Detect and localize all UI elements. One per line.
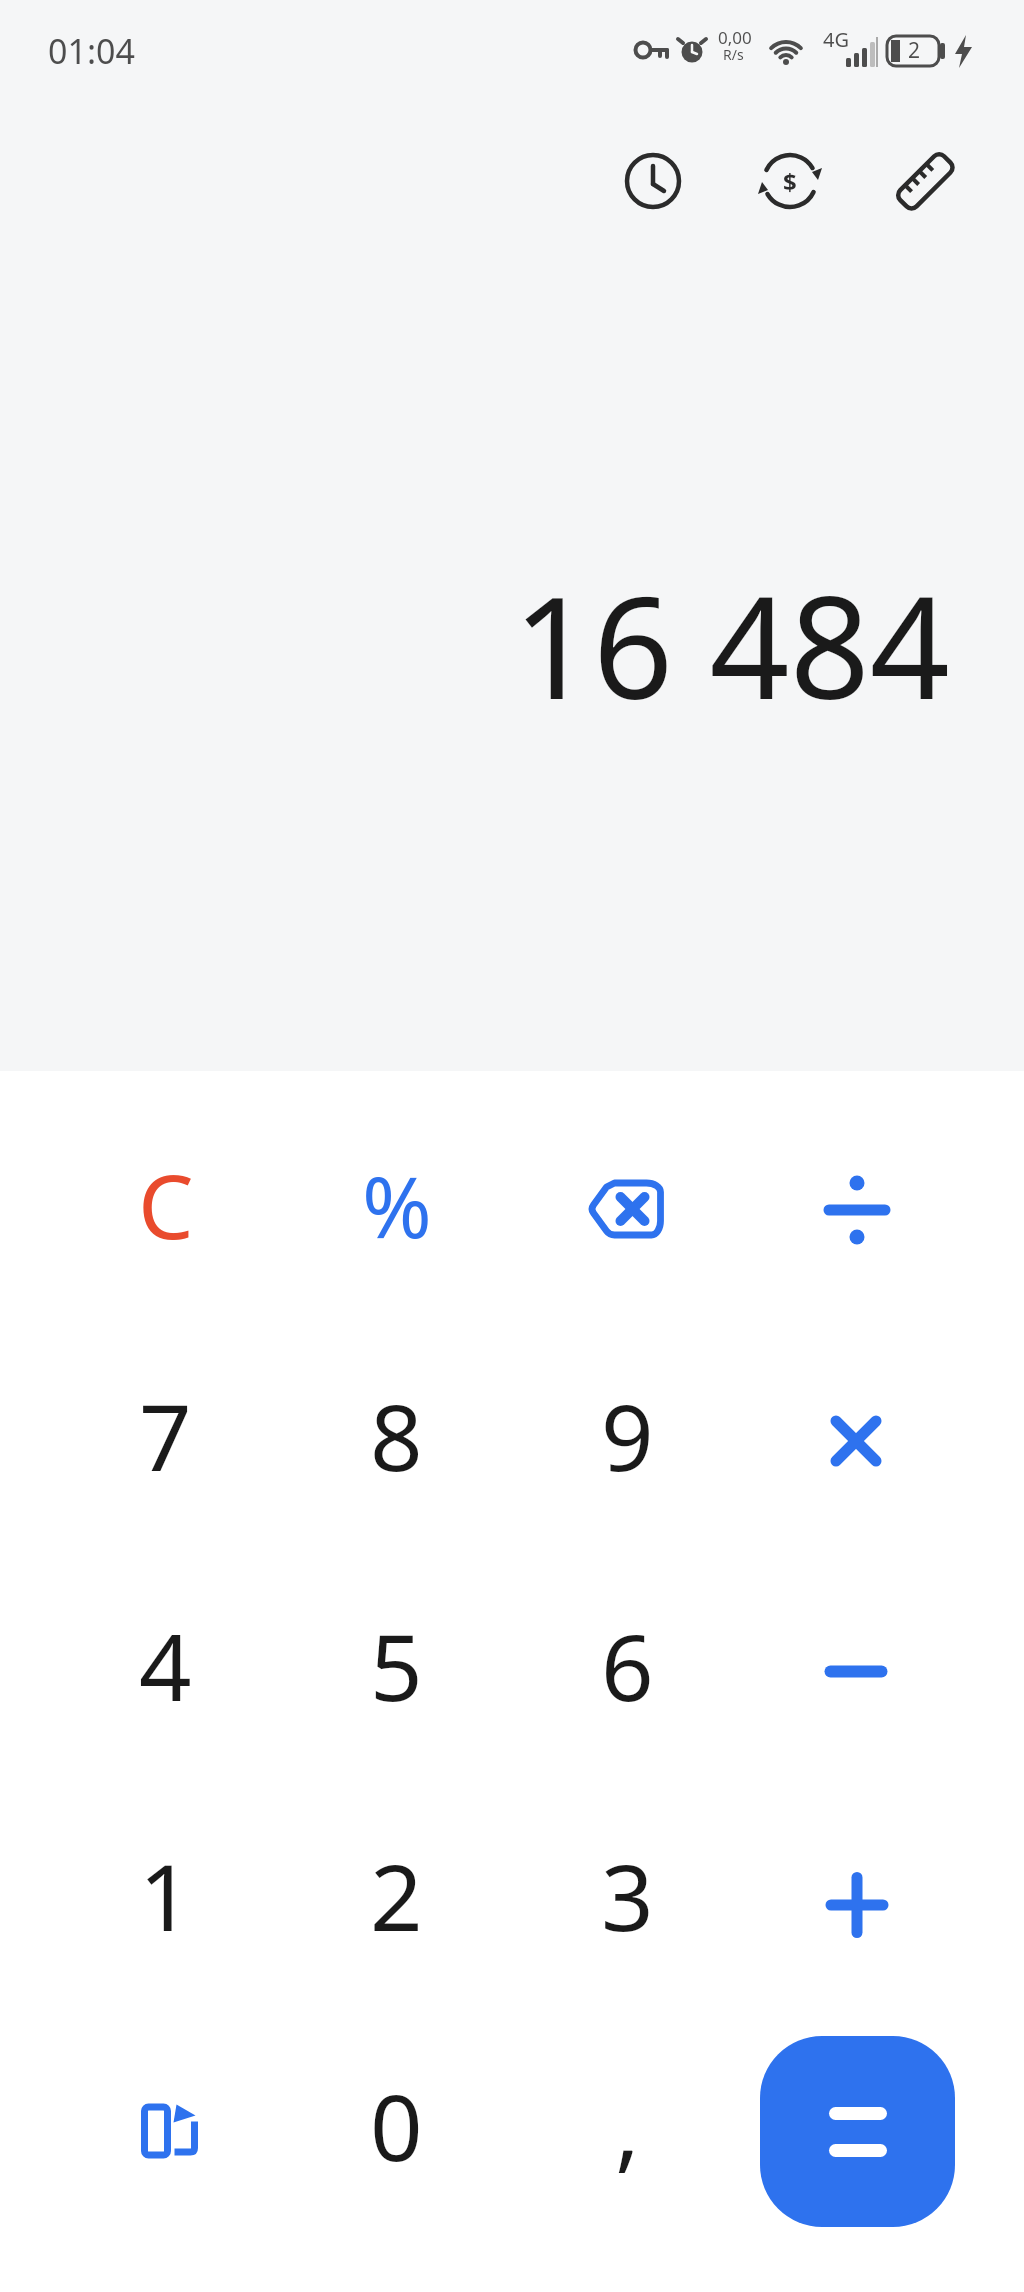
button[interactable] — [743, 1780, 974, 2010]
staticText: 0 — [370, 2063, 423, 2188]
staticText: 4G — [823, 26, 849, 53]
button[interactable] — [620, 148, 686, 214]
staticText: 0,00 — [718, 26, 752, 49]
button[interactable] — [743, 1320, 974, 1550]
staticText: 7 — [139, 1373, 192, 1498]
staticText: 2 — [370, 1833, 423, 1958]
button[interactable] — [760, 2036, 955, 2227]
staticText: % — [362, 1148, 432, 1262]
button[interactable]: 6 — [512, 1550, 743, 1780]
staticText: 16 484 — [513, 549, 950, 740]
staticText: 1 — [139, 1833, 192, 1958]
staticText: 2 — [908, 36, 921, 65]
button[interactable]: 8 — [281, 1320, 512, 1550]
button[interactable]: 9 — [512, 1320, 743, 1550]
button[interactable] — [50, 2010, 281, 2240]
button[interactable]: , — [512, 2010, 743, 2240]
staticText: 6 — [601, 1603, 654, 1728]
button[interactable]: 3 — [512, 1780, 743, 2010]
staticText: C — [138, 1145, 194, 1265]
staticText: 9 — [601, 1373, 654, 1498]
staticText: 01:04 — [48, 28, 135, 74]
button[interactable]: 1 — [50, 1780, 281, 2010]
button[interactable] — [892, 148, 958, 214]
staticText: 4 — [139, 1603, 192, 1728]
button[interactable]: 5 — [281, 1550, 512, 1780]
staticText: R/s — [723, 45, 744, 64]
button[interactable]: 4 — [50, 1550, 281, 1780]
staticText: 5 — [370, 1603, 423, 1728]
staticText: 3 — [601, 1833, 654, 1958]
button[interactable]: 7 — [50, 1320, 281, 1550]
staticText: 8 — [370, 1373, 423, 1498]
button[interactable]: C — [50, 1090, 281, 1320]
staticText: $ — [783, 165, 797, 198]
button[interactable]: 0 — [281, 2010, 512, 2240]
button[interactable] — [743, 1550, 974, 1780]
button[interactable]: % — [281, 1090, 512, 1320]
staticText: , — [615, 2063, 640, 2188]
button[interactable]: 2 — [281, 1780, 512, 2010]
button[interactable]: $ — [757, 148, 823, 214]
button[interactable] — [743, 1090, 974, 1320]
button[interactable] — [512, 1090, 743, 1320]
